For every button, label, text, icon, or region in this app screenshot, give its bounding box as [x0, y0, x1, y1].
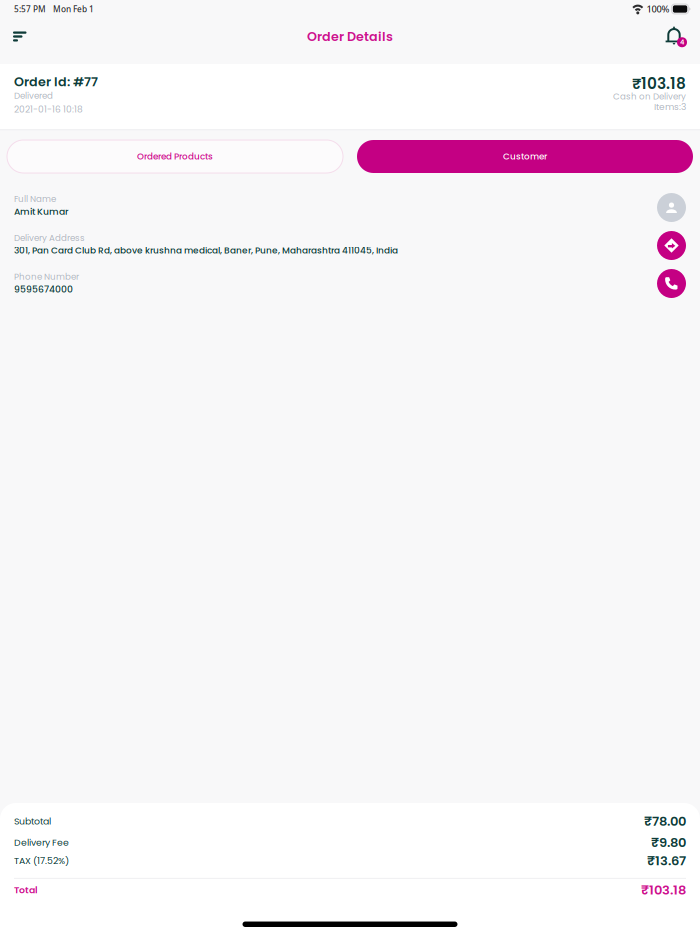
staticText: 5:57 PM	[14, 3, 46, 15]
staticText: 9595674000	[14, 283, 73, 296]
staticText: Mon Feb 1	[53, 3, 94, 15]
staticText: Total	[14, 883, 38, 897]
button[interactable]: Menu	[0, 18, 57, 55]
staticText: Delivered	[14, 90, 53, 102]
button[interactable]: Ordered Products	[7, 140, 343, 173]
staticText: Cash on Delivery	[613, 90, 686, 103]
button[interactable]: Customer	[357, 140, 693, 173]
staticText: 301, Pan Card Club Rd, above krushna med…	[14, 244, 398, 257]
staticText: ₹103.18	[632, 73, 686, 94]
staticText: Amit Kumar	[14, 205, 69, 218]
button[interactable]: Call	[657, 269, 686, 298]
staticText: ₹13.67	[647, 852, 686, 870]
staticText: ₹103.18	[641, 881, 686, 899]
staticText: TAX (17.52%)	[14, 854, 69, 867]
button[interactable]: Customer profile	[657, 193, 686, 222]
button[interactable]: Notifications	[643, 18, 700, 55]
staticText: ₹9.80	[651, 833, 686, 852]
staticText: Order Id: #77	[14, 73, 98, 91]
staticText: 100%	[647, 3, 670, 15]
staticText: Delivery Address	[14, 232, 85, 244]
staticText: Items:3	[654, 101, 686, 113]
staticText: Order Details	[307, 28, 393, 45]
staticText: ₹78.00	[644, 812, 686, 830]
staticText: Ordered Products	[137, 150, 213, 163]
staticText: Full Name	[14, 193, 56, 205]
staticText: 2021-01-16 10:18	[14, 103, 83, 116]
staticText: Phone Number	[14, 271, 79, 283]
staticText: Customer	[503, 150, 547, 163]
staticText: Delivery Fee	[14, 836, 69, 849]
staticText: Subtotal	[14, 815, 51, 828]
button[interactable]: Directions	[657, 231, 686, 260]
staticText: 4	[680, 38, 684, 47]
